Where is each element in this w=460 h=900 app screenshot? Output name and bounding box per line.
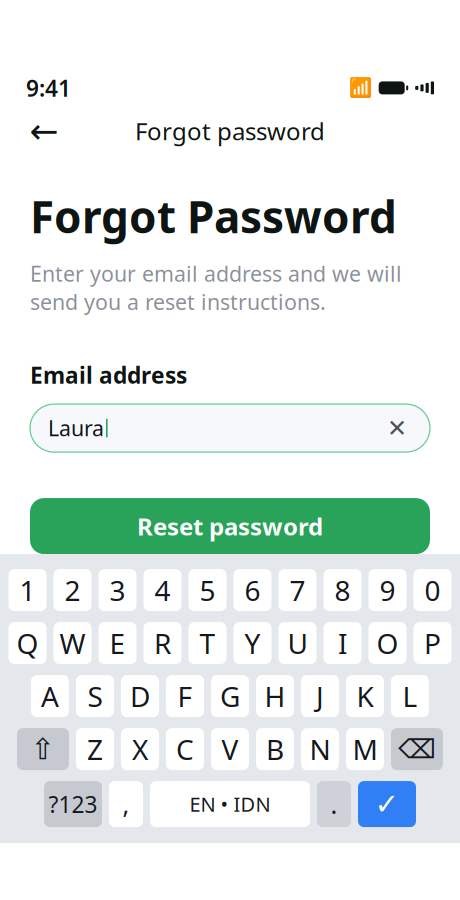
button[interactable]: J [301, 675, 339, 717]
button[interactable]: W [53, 622, 91, 664]
staticText: ✓ [374, 787, 399, 821]
staticText: 2 [64, 571, 80, 609]
button[interactable]: Reset password [30, 498, 430, 554]
staticText: T [199, 624, 215, 662]
staticText: 6 [244, 571, 260, 609]
button[interactable]: U [278, 622, 316, 664]
button[interactable]: 2 [53, 569, 91, 611]
button[interactable]: 8 [323, 569, 361, 611]
staticText: ?123 [48, 789, 97, 819]
staticText: X [132, 730, 148, 768]
button[interactable]: 0 [413, 569, 451, 611]
staticText: ⇧ [30, 732, 55, 766]
button[interactable]: K [346, 675, 384, 717]
button[interactable]: T [188, 622, 226, 664]
staticText: M [352, 730, 377, 768]
staticText: Laura [48, 414, 104, 442]
button[interactable]: C [166, 728, 204, 770]
staticText: ⌫ [398, 734, 436, 764]
staticText: D [130, 677, 150, 715]
staticText: 8 [334, 571, 350, 609]
button[interactable]: I [323, 622, 361, 664]
staticText: 4 [154, 571, 170, 609]
button[interactable]: 5 [188, 569, 226, 611]
staticText: U [287, 624, 307, 662]
button[interactable]: 3 [98, 569, 136, 611]
staticText: B [266, 730, 284, 768]
staticText: E [109, 624, 125, 662]
staticText: EN • IDN [189, 791, 270, 817]
staticText: Z [87, 730, 103, 768]
staticText: C [176, 730, 194, 768]
staticText: Forgot Password [30, 187, 397, 245]
staticText: 7 [289, 571, 305, 609]
staticText: F [177, 677, 192, 715]
button[interactable]: S [76, 675, 114, 717]
button[interactable]: EN • IDN [150, 781, 310, 827]
staticText: 1 [19, 571, 35, 609]
staticText: W [59, 624, 85, 662]
staticText: , [122, 787, 129, 821]
staticText: R [154, 624, 171, 662]
button[interactable]: Shift [17, 728, 69, 770]
staticText: 5 [199, 571, 215, 609]
button[interactable]: V [211, 728, 249, 770]
button[interactable]: O [368, 622, 406, 664]
staticText: A [41, 677, 59, 715]
button[interactable]: ?123 [44, 781, 102, 827]
button[interactable]: , [109, 781, 143, 827]
button[interactable]: P [413, 622, 451, 664]
button[interactable]: F [166, 675, 204, 717]
button[interactable]: . [317, 781, 351, 827]
staticText: O [376, 624, 398, 662]
button[interactable]: B [256, 728, 294, 770]
staticText: 9:41 [26, 73, 71, 103]
button[interactable]: Laura [30, 404, 430, 452]
staticText: Reset password [137, 510, 323, 542]
button[interactable]: 4 [143, 569, 181, 611]
button[interactable]: M [346, 728, 384, 770]
staticText: N [309, 730, 330, 768]
staticText: Q [16, 624, 38, 662]
staticText: G [220, 677, 240, 715]
staticText: Forgot password [135, 115, 325, 147]
staticText: Y [244, 624, 260, 662]
button[interactable]: 7 [278, 569, 316, 611]
button[interactable]: 9 [368, 569, 406, 611]
button[interactable]: X [121, 728, 159, 770]
staticText: S [87, 677, 102, 715]
button[interactable]: G [211, 675, 249, 717]
button[interactable]: Q [8, 622, 46, 664]
button[interactable]: L [391, 675, 429, 717]
staticText: V [221, 730, 238, 768]
staticText: ✕ [387, 414, 407, 442]
button[interactable]: A [31, 675, 69, 717]
button[interactable]: N [301, 728, 339, 770]
button[interactable]: Back [22, 109, 66, 153]
staticText: Email address [30, 360, 187, 390]
staticText: L [402, 677, 417, 715]
button[interactable]: Return [358, 781, 416, 827]
button[interactable]: E [98, 622, 136, 664]
staticText: I [338, 624, 347, 662]
staticText: Enter your email address and we will sen… [30, 259, 402, 316]
button[interactable]: Z [76, 728, 114, 770]
staticText: H [264, 677, 285, 715]
button[interactable]: D [121, 675, 159, 717]
button[interactable]: 6 [233, 569, 271, 611]
staticText: 3 [109, 571, 125, 609]
staticText: ← [29, 111, 58, 150]
button[interactable]: 1 [8, 569, 46, 611]
button[interactable]: Backspace [391, 728, 443, 770]
button[interactable]: Y [233, 622, 271, 664]
staticText: P [424, 624, 441, 662]
staticText: J [316, 677, 324, 715]
staticText: 📶 [349, 77, 372, 98]
staticText: 9 [379, 571, 395, 609]
staticText: . [330, 787, 337, 821]
button[interactable]: R [143, 622, 181, 664]
staticText: 0 [424, 571, 440, 609]
button[interactable]: H [256, 675, 294, 717]
staticText: K [356, 677, 373, 715]
